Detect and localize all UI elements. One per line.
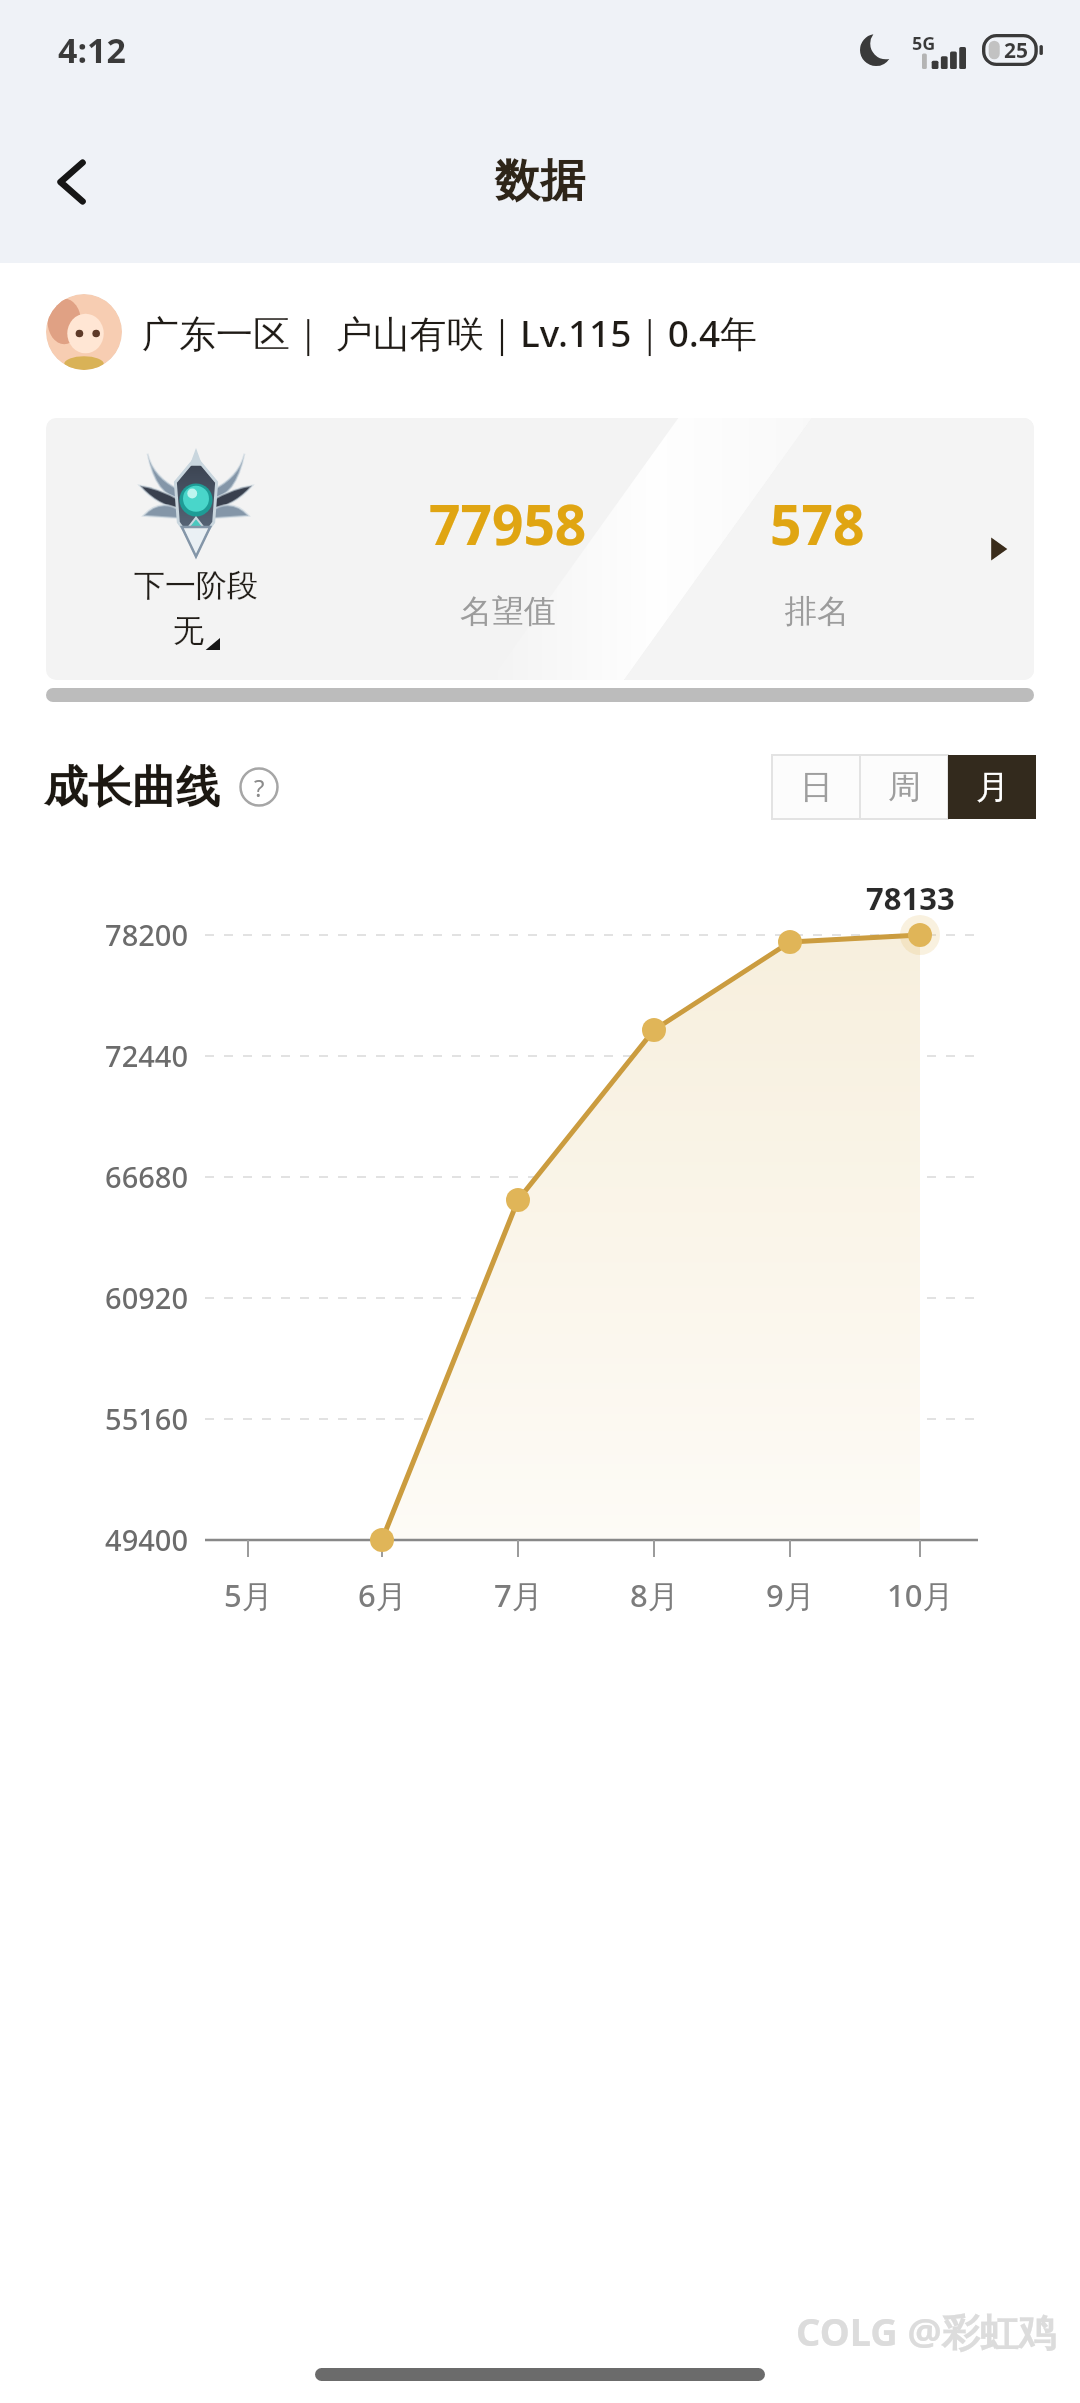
staticText: ? <box>254 771 265 804</box>
staticText: 55160 <box>48 1399 188 1438</box>
staticText: 10月 <box>887 1574 954 1616</box>
staticText: 78133 <box>866 877 955 919</box>
staticText: 下一阶段 <box>134 566 258 605</box>
button[interactable]: 说明 <box>238 766 280 808</box>
staticText: 6月 <box>358 1574 407 1616</box>
staticText: 9月 <box>766 1574 815 1616</box>
staticText: 日 <box>800 766 833 808</box>
staticText: 周 <box>888 766 921 808</box>
button[interactable]: 日 <box>772 755 860 819</box>
button[interactable]: 广东一区｜ 户山有咲｜Lv.115｜0.4年 <box>0 282 1080 382</box>
staticText: 月 <box>976 766 1009 808</box>
staticText: 77958 <box>429 486 587 561</box>
staticText: 无 <box>173 611 204 650</box>
staticText: 5月 <box>224 1574 273 1616</box>
button[interactable]: 下一阶段 <box>46 418 1034 680</box>
staticText: 60920 <box>48 1278 188 1317</box>
staticText: 8月 <box>630 1574 679 1616</box>
staticText: 4:12 <box>58 27 126 73</box>
button[interactable]: 周 <box>860 755 948 819</box>
staticText: 78200 <box>48 915 188 954</box>
staticText: 排名 <box>785 591 849 631</box>
staticText: 名望值 <box>460 591 556 631</box>
staticText: 25 <box>1004 36 1029 65</box>
button[interactable]: Back <box>24 134 120 230</box>
staticText: 72440 <box>48 1036 188 1075</box>
staticText: 7月 <box>494 1574 543 1616</box>
staticText: 66680 <box>48 1157 188 1196</box>
staticText: 广东一区｜ 户山有咲｜Lv.115｜0.4年 <box>142 307 758 358</box>
button[interactable]: 月 <box>948 755 1036 819</box>
staticText: 数据 <box>495 153 585 210</box>
staticText: COLG @彩虹鸡 <box>796 2305 1056 2357</box>
staticText: 5G <box>912 31 936 56</box>
staticText: 49400 <box>48 1520 188 1559</box>
staticText: 578 <box>770 486 865 561</box>
staticText: 成长曲线 <box>44 760 220 815</box>
